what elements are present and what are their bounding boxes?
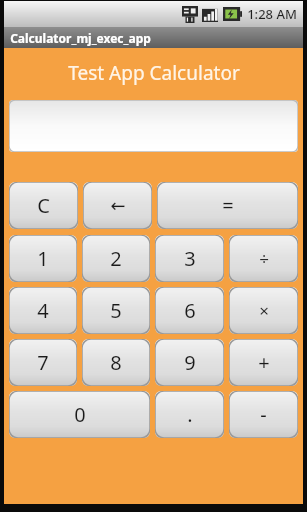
staticText: 6 <box>184 297 196 324</box>
button[interactable]: 6 <box>155 287 224 334</box>
staticText: 5 <box>110 297 122 324</box>
button[interactable]: 8 <box>82 339 150 386</box>
button[interactable]: 7 <box>9 339 77 386</box>
staticText: - <box>260 401 267 428</box>
staticText: Test App Calculator <box>68 60 240 86</box>
button[interactable]: 5 <box>82 287 150 334</box>
button[interactable]: 0 <box>9 391 150 438</box>
button[interactable]: C <box>9 182 78 229</box>
staticText: ÷ <box>259 247 269 270</box>
staticText: 4 <box>37 297 49 324</box>
button[interactable]: . <box>155 391 224 438</box>
button[interactable]: 4 <box>9 287 77 334</box>
button[interactable]: × <box>229 287 298 334</box>
button[interactable]: = <box>157 182 298 229</box>
staticText: ← <box>110 195 126 216</box>
staticText: 1:28 AM <box>247 5 297 23</box>
staticText: 8 <box>110 349 122 376</box>
staticText: 9 <box>184 349 196 376</box>
staticText: × <box>259 299 269 322</box>
staticText: + <box>258 349 270 376</box>
button[interactable]: 1 <box>9 235 77 282</box>
staticText: = <box>222 192 234 219</box>
staticText: Calculator_mj_exec_app <box>10 30 151 46</box>
button[interactable]: 3 <box>155 235 224 282</box>
staticText: 7 <box>37 349 49 376</box>
staticText: 2 <box>110 245 122 272</box>
button[interactable]: - <box>229 391 298 438</box>
button[interactable]: + <box>229 339 298 386</box>
button[interactable]: 9 <box>155 339 224 386</box>
button[interactable] <box>9 100 298 152</box>
staticText: C <box>37 192 50 219</box>
button[interactable]: 2 <box>82 235 150 282</box>
button[interactable]: Backspace <box>83 182 152 229</box>
staticText: 1 <box>37 245 49 272</box>
staticText: . <box>187 401 193 428</box>
button[interactable]: ÷ <box>229 235 298 282</box>
staticText: 0 <box>74 401 86 428</box>
staticText: 3 <box>184 245 196 272</box>
